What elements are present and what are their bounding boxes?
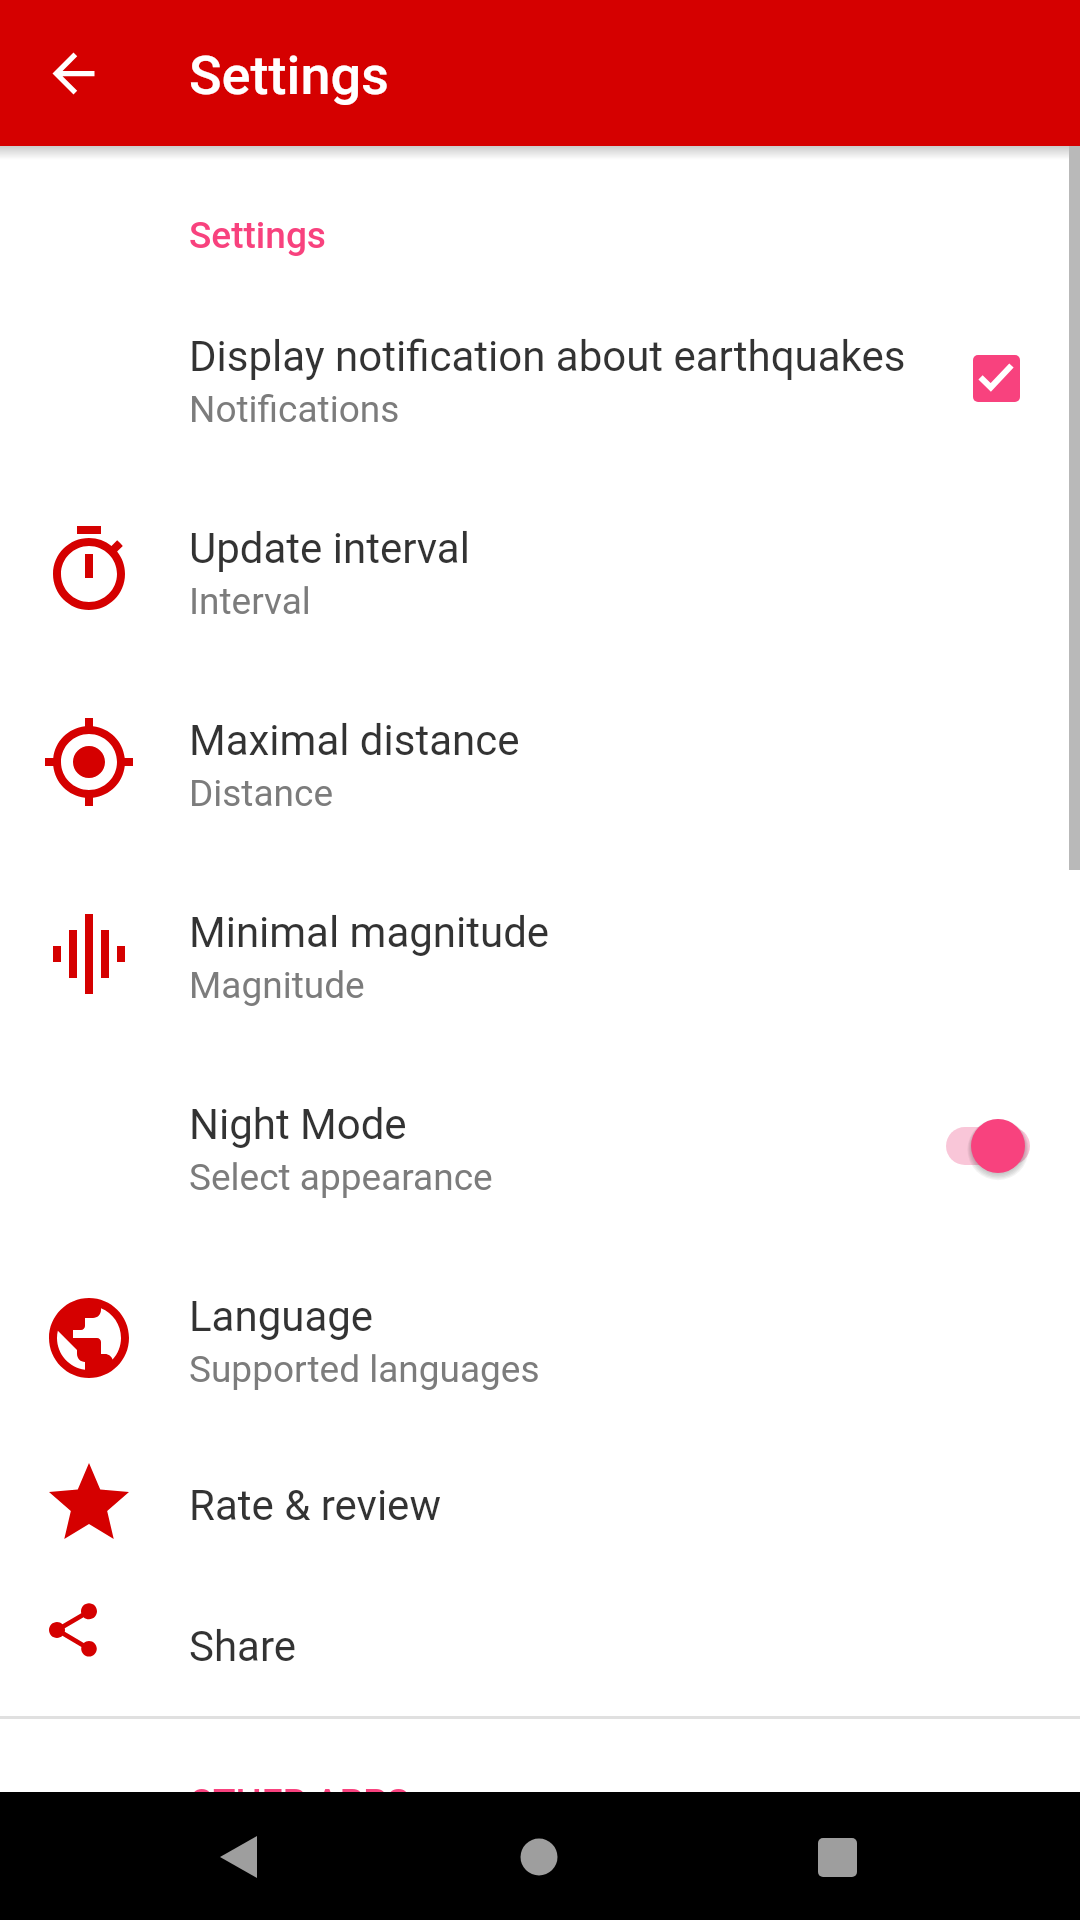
button[interactable]: Minimal magnitude xyxy=(0,858,1080,1050)
staticText: Magnitude xyxy=(189,964,365,1007)
staticText: Supported languages xyxy=(189,1348,540,1391)
button[interactable]: Share xyxy=(0,1576,1080,1716)
button[interactable]: Update interval xyxy=(0,474,1080,666)
staticText: Settings xyxy=(189,214,326,257)
staticText: Select appearance xyxy=(189,1156,493,1199)
button[interactable]: Recent apps xyxy=(767,1792,909,1920)
staticText: Share xyxy=(189,1622,297,1671)
button[interactable]: Language xyxy=(0,1242,1080,1434)
staticText: Rate & review xyxy=(189,1481,441,1530)
staticText: Update interval xyxy=(189,524,470,573)
button[interactable]: Display notification about earthquakes xyxy=(0,282,1080,474)
staticText: Interval xyxy=(189,580,311,623)
button[interactable]: Back xyxy=(168,1792,310,1920)
staticText: Notifications xyxy=(189,388,400,431)
button[interactable]: Night Mode xyxy=(0,1050,1080,1242)
staticText: Night Mode xyxy=(189,1100,407,1149)
staticText: OTHER APPS xyxy=(189,1781,410,1792)
button[interactable]: Night Mode xyxy=(933,1098,1043,1194)
staticText: Minimal magnitude xyxy=(189,908,550,957)
staticText: Settings xyxy=(189,44,389,107)
button[interactable]: Rate & review xyxy=(0,1434,1080,1576)
button[interactable]: Maximal distance xyxy=(0,666,1080,858)
staticText: Language xyxy=(189,1292,374,1341)
staticText: Distance xyxy=(189,772,334,815)
button[interactable]: Display notification about earthquakes xyxy=(948,330,1044,426)
staticText: Maximal distance xyxy=(189,716,520,765)
button[interactable]: Home xyxy=(468,1792,610,1920)
staticText: Display notification about earthquakes xyxy=(189,332,906,381)
button[interactable]: Back xyxy=(25,25,121,121)
